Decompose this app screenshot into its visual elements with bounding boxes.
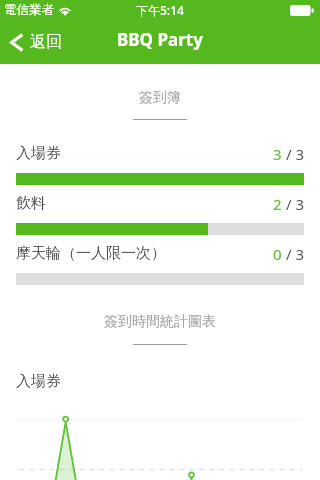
staticText: / 3 [282,244,304,262]
staticText: 飲料 [16,194,46,212]
staticText: 0 [273,244,282,262]
staticText: 入場券 [16,144,61,162]
staticText: 2 [273,194,282,212]
button[interactable]: 返回 Back [0,20,72,64]
staticText: 簽到簿 [0,89,320,107]
staticText: 電信業者 [4,2,54,18]
staticText: 摩天輪（一人限一次） [16,244,166,262]
staticText: 返回 [30,32,62,52]
button[interactable]: 入場券 [0,144,320,185]
staticText: 入場券 [16,372,61,391]
staticText: / 3 [282,194,304,212]
button[interactable]: 摩天輪（一人限一次） [0,244,320,285]
staticText: BBQ Party [117,28,203,51]
button[interactable]: 飲料 [0,194,320,235]
staticText: / 3 [282,144,304,162]
staticText: 下午5:14 [136,2,184,18]
staticText: 3 [273,144,282,162]
staticText: 簽到時間統計圖表 [0,313,320,331]
